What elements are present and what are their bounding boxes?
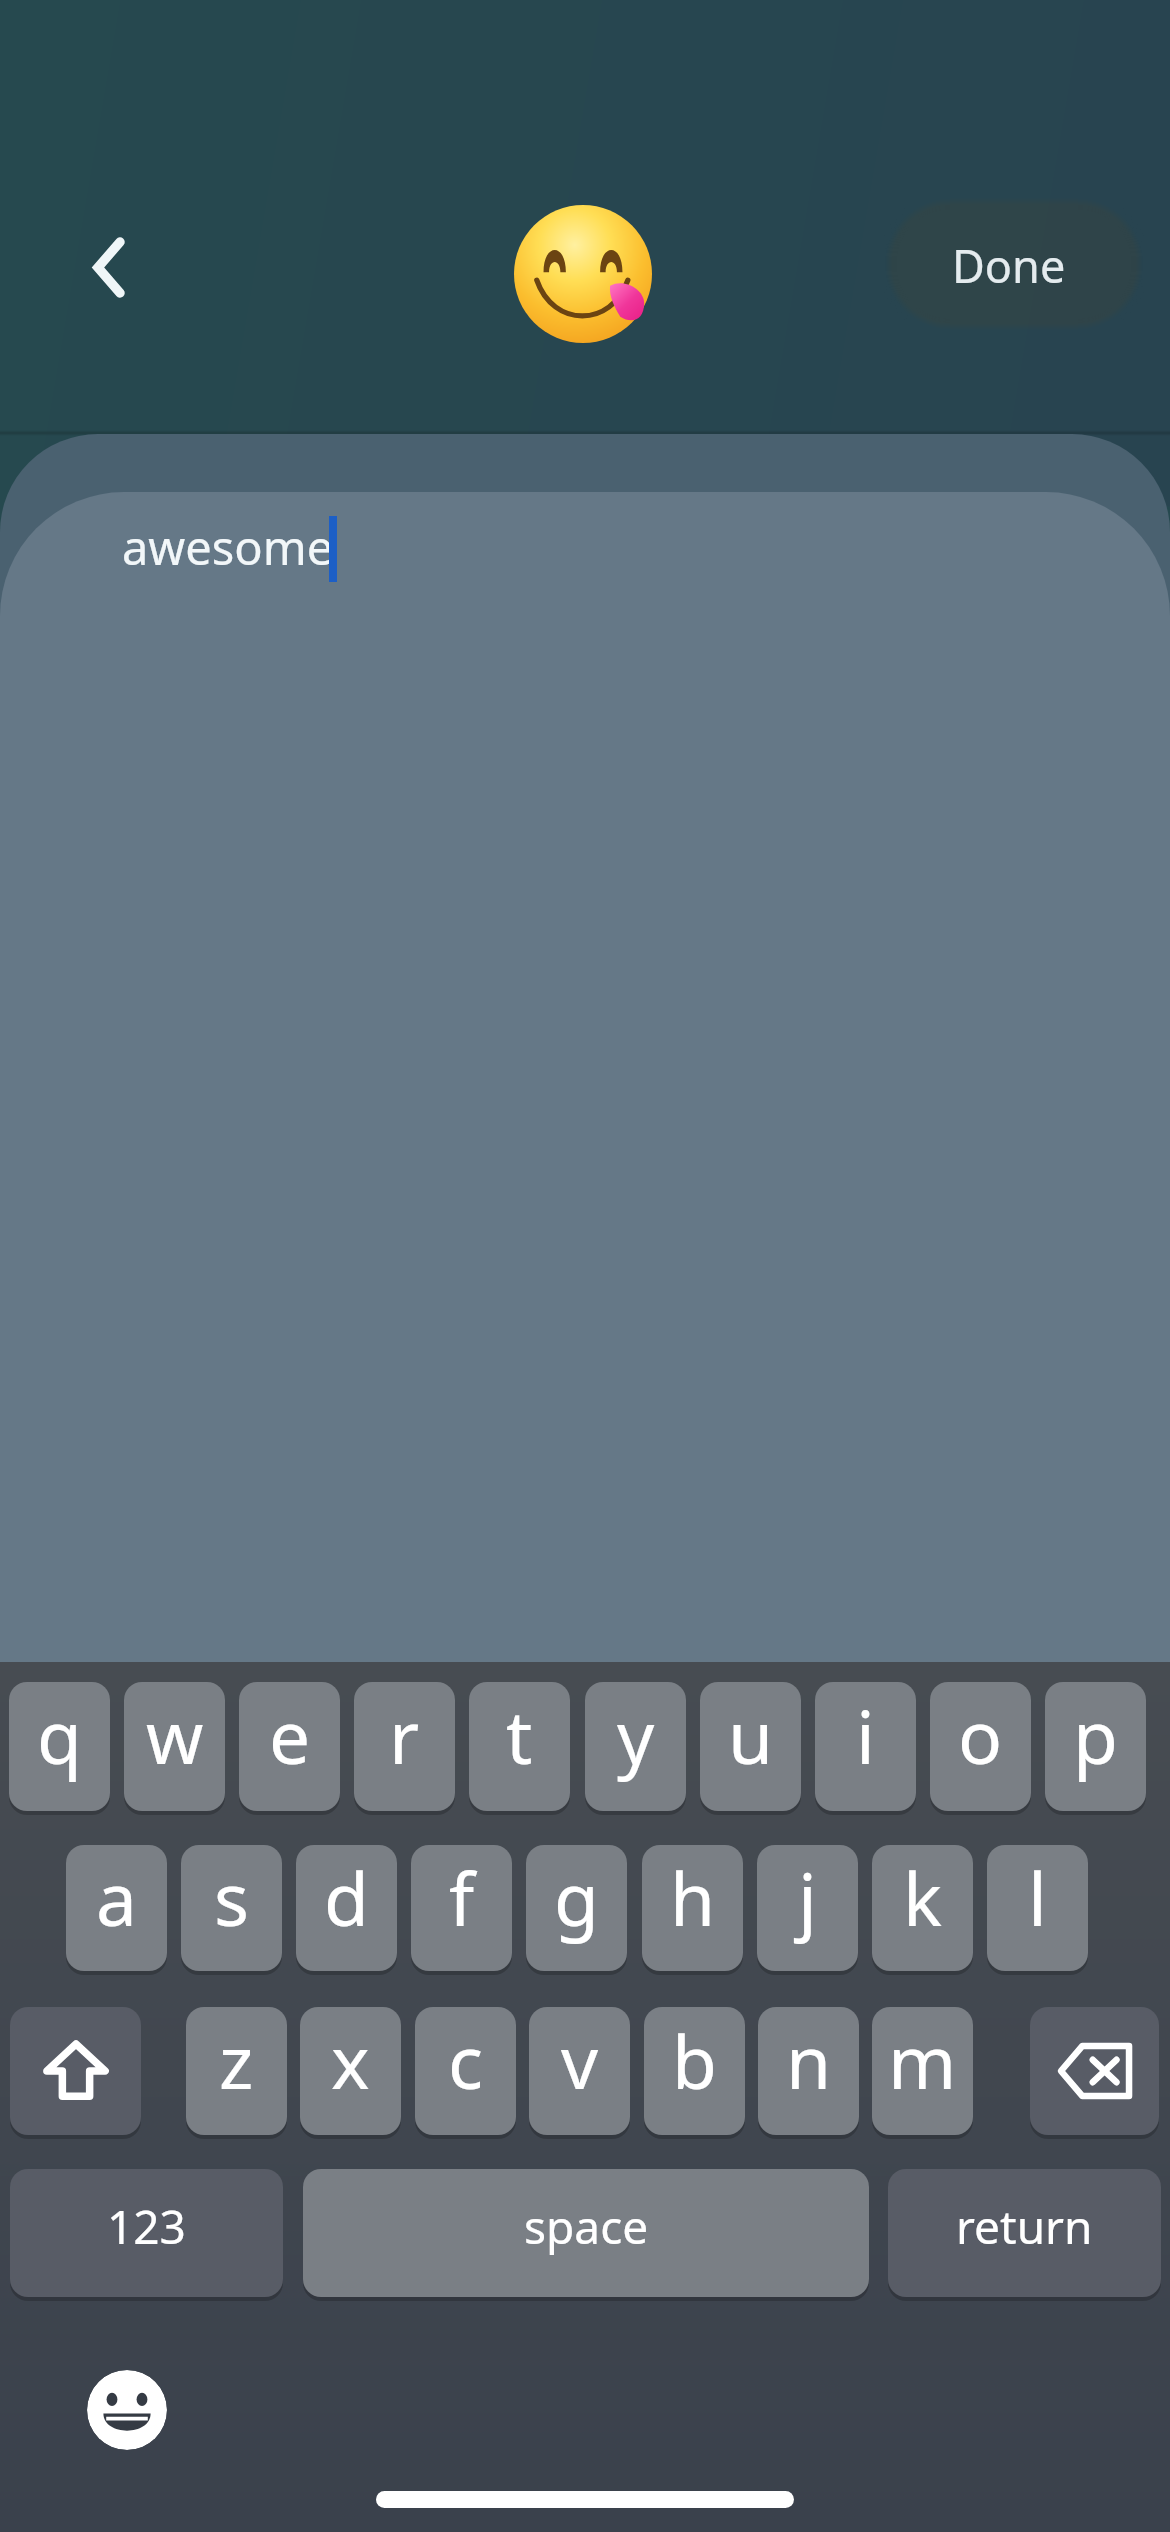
button[interactable]: Back: [38, 196, 180, 338]
staticText: c: [448, 2011, 484, 2110]
button[interactable]: l: [987, 1845, 1088, 1971]
button[interactable]: m: [872, 2007, 973, 2135]
staticText: z: [219, 2011, 254, 2110]
staticText: h: [670, 1848, 716, 1947]
button[interactable]: j: [757, 1845, 858, 1971]
button[interactable]: o: [930, 1682, 1031, 1811]
staticText: n: [786, 2011, 832, 2110]
staticText: q: [37, 1686, 82, 1785]
button[interactable]: y: [585, 1682, 686, 1811]
staticText: d: [324, 1848, 369, 1947]
button[interactable]: space: [303, 2169, 869, 2297]
button[interactable]: a: [66, 1845, 167, 1971]
staticText: x: [331, 2011, 370, 2110]
staticText: awesome: [122, 515, 334, 579]
staticText: w: [146, 1686, 204, 1785]
staticText: j: [798, 1848, 817, 1947]
button[interactable]: f: [411, 1845, 512, 1971]
staticText: k: [903, 1848, 942, 1947]
button[interactable]: x: [300, 2007, 401, 2135]
button[interactable]: e: [239, 1682, 340, 1811]
button[interactable]: n: [758, 2007, 859, 2135]
button[interactable]: 123: [10, 2169, 283, 2297]
button[interactable]: Done: [868, 186, 1160, 342]
button[interactable]: d: [296, 1845, 397, 1971]
staticText: f: [449, 1848, 475, 1947]
staticText: y: [617, 1686, 655, 1785]
button[interactable]: return: [888, 2169, 1161, 2297]
button[interactable]: r: [354, 1682, 455, 1811]
staticText: r: [389, 1686, 420, 1785]
button[interactable]: h: [642, 1845, 743, 1971]
button[interactable]: [0, 492, 1170, 1662]
button[interactable]: v: [529, 2007, 630, 2135]
staticText: p: [1073, 1686, 1118, 1785]
button[interactable]: k: [872, 1845, 973, 1971]
button[interactable]: i: [815, 1682, 916, 1811]
staticText: v: [561, 2011, 599, 2110]
button[interactable]: Emoji keyboard: [87, 2370, 167, 2450]
staticText: e: [269, 1686, 311, 1785]
button[interactable]: s: [181, 1845, 282, 1971]
button[interactable]: c: [415, 2007, 516, 2135]
button[interactable]: b: [644, 2007, 745, 2135]
button[interactable]: t: [469, 1682, 570, 1811]
button[interactable]: Backspace: [1030, 2007, 1159, 2135]
button[interactable]: Shift: [10, 2007, 141, 2135]
button[interactable]: w: [124, 1682, 225, 1811]
staticText: m: [888, 2011, 957, 2110]
button[interactable]: g: [526, 1845, 627, 1971]
staticText: o: [958, 1686, 1003, 1785]
staticText: g: [554, 1848, 599, 1947]
staticText: l: [1028, 1848, 1047, 1947]
button[interactable]: q: [9, 1682, 110, 1811]
staticText: s: [214, 1848, 249, 1947]
button[interactable]: z: [186, 2007, 287, 2135]
staticText: Done: [952, 235, 1066, 296]
button[interactable]: u: [700, 1682, 801, 1811]
staticText: 123: [107, 2195, 186, 2258]
staticText: t: [506, 1686, 533, 1785]
staticText: space: [524, 2195, 649, 2258]
staticText: i: [856, 1686, 875, 1785]
staticText: u: [728, 1686, 774, 1785]
staticText: b: [672, 2011, 717, 2110]
staticText: a: [96, 1848, 137, 1947]
staticText: return: [956, 2195, 1093, 2258]
button[interactable]: p: [1045, 1682, 1146, 1811]
